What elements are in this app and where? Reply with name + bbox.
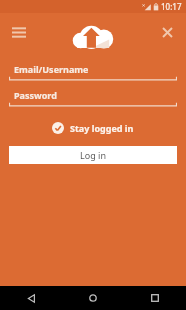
button[interactable]: Log in [9, 146, 177, 164]
staticText: Email/Username [14, 63, 89, 75]
staticText: Stay logged in [70, 122, 134, 134]
button[interactable]: Email/Username [9, 62, 177, 81]
button[interactable]: Back [0, 286, 62, 310]
button[interactable]: Stay logged in [48, 120, 138, 136]
staticText: Log in [80, 149, 106, 161]
button[interactable]: Password [9, 88, 177, 107]
staticText: 10:17 [161, 1, 182, 12]
button[interactable]: Home [62, 286, 124, 310]
staticText: Password [14, 89, 57, 101]
button[interactable]: Recent apps [124, 286, 186, 310]
button[interactable]: Close [153, 18, 181, 46]
button[interactable]: Menu [5, 18, 33, 46]
